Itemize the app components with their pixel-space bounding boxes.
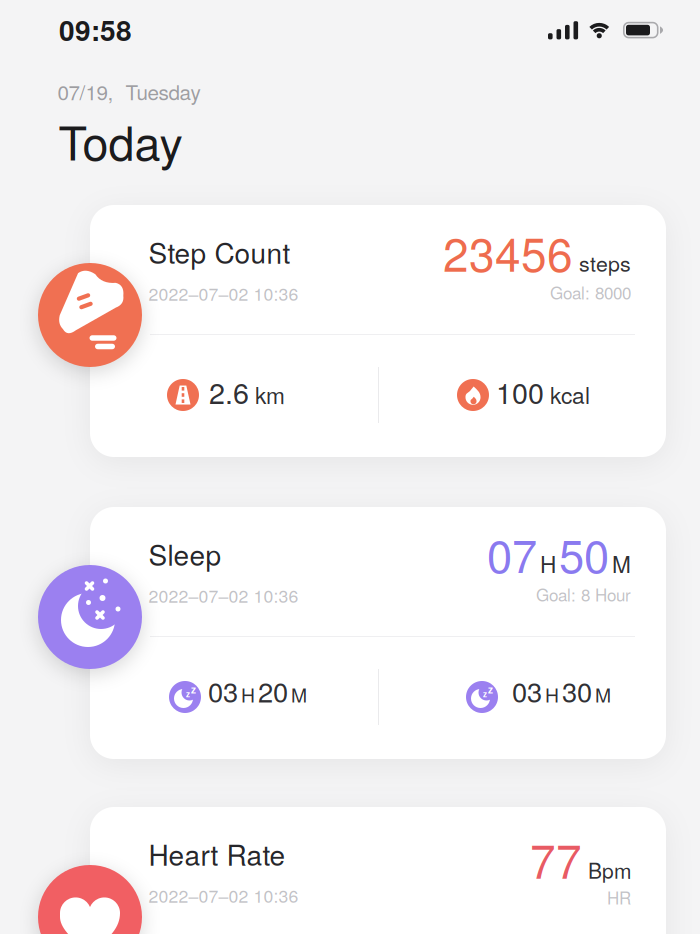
staticText: km xyxy=(255,378,285,410)
staticText: z xyxy=(488,682,493,697)
staticText: 100 xyxy=(496,371,544,412)
staticText: 03 xyxy=(208,671,238,710)
staticText: z xyxy=(483,688,487,700)
staticText: Heart Rate xyxy=(148,833,285,874)
staticText: HR xyxy=(607,885,631,909)
staticText: 07 xyxy=(487,521,537,586)
staticText: Sleep xyxy=(148,533,221,574)
staticText: Bpm xyxy=(588,855,631,885)
staticText: 2022–07–02 10:36 xyxy=(148,582,298,608)
staticText: Today xyxy=(58,107,182,174)
button[interactable]: Sleep xyxy=(90,507,666,759)
staticText: H xyxy=(540,547,556,579)
staticText: M xyxy=(595,680,611,708)
button[interactable]: Heart Rate xyxy=(90,807,666,934)
staticText: 03 xyxy=(512,671,542,710)
staticText: Goal: 8000 xyxy=(550,280,631,304)
staticText: 2022–07–02 10:36 xyxy=(148,280,298,306)
staticText: M xyxy=(291,680,307,708)
staticText: 77 xyxy=(530,826,582,892)
staticText: Step Count xyxy=(148,231,290,272)
staticText: 2022–07–02 10:36 xyxy=(148,882,298,908)
staticText: Goal: 8 Hour xyxy=(536,582,631,606)
staticText: H xyxy=(545,680,559,708)
staticText: z xyxy=(191,682,196,697)
staticText: 20 xyxy=(258,671,288,710)
staticText: H xyxy=(241,680,255,708)
staticText: kcal xyxy=(550,378,590,410)
staticText: z xyxy=(186,688,190,700)
staticText: 50 xyxy=(559,521,609,586)
staticText: 09:58 xyxy=(59,9,132,50)
staticText: 07/19, Tuesday xyxy=(57,76,200,106)
button[interactable]: Step Count xyxy=(90,205,666,457)
staticText: 30 xyxy=(562,671,592,710)
staticText: 23456 xyxy=(443,219,573,285)
staticText: 2.6 xyxy=(209,371,249,412)
staticText: M xyxy=(612,547,631,579)
staticText: steps xyxy=(579,247,631,278)
